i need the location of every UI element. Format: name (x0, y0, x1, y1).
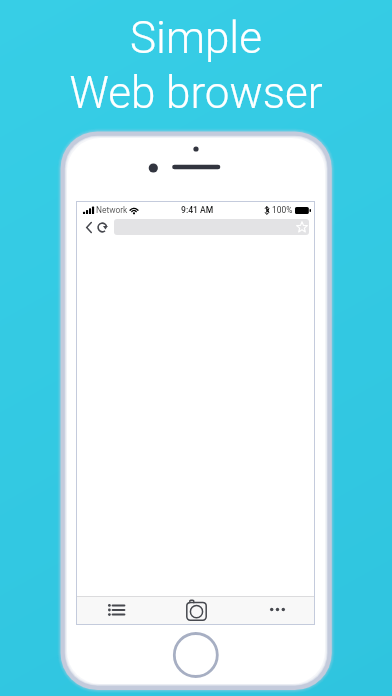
button[interactable]: Camera (156, 597, 235, 624)
button[interactable]: Reload (98, 219, 112, 235)
button[interactable]: Back (83, 219, 95, 235)
button[interactable]: More options (235, 597, 314, 624)
staticText: 100% (272, 205, 293, 215)
staticText: Simple (130, 12, 262, 64)
staticText: Network (96, 205, 128, 215)
staticText: 9:41 AM (181, 205, 214, 215)
button[interactable]: Bookmarks (77, 597, 156, 624)
staticText: Web browser (69, 67, 323, 119)
button[interactable] (114, 219, 309, 235)
